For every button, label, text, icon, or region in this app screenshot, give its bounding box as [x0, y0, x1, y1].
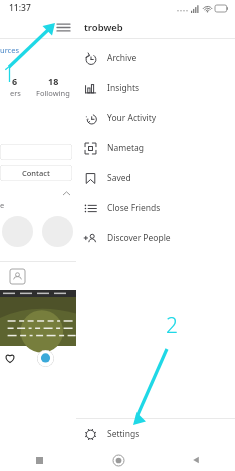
button[interactable]: Nametag: [76, 133, 235, 163]
staticText: trobweb: [84, 21, 123, 34]
staticText: Nametag: [107, 142, 145, 154]
staticText: urces: [0, 45, 20, 55]
staticText: 6: [12, 75, 18, 87]
staticText: e: [0, 200, 5, 210]
staticText: 1: [3, 60, 15, 89]
staticText: 18: [48, 75, 59, 87]
button[interactable]: [0, 144, 72, 160]
staticText: Contact: [22, 168, 50, 178]
button[interactable]: Back: [157, 449, 235, 471]
staticText: ers: [10, 88, 21, 98]
staticText: 11:37: [9, 2, 31, 14]
staticText: 2: [166, 311, 178, 340]
button[interactable]: Home: [79, 449, 157, 471]
button[interactable]: Recent apps: [0, 449, 79, 471]
button[interactable]: Settings: [76, 419, 235, 449]
staticText: Archive: [107, 52, 137, 64]
staticText: Discover People: [107, 232, 171, 244]
button[interactable]: Your Activity: [76, 103, 235, 133]
button[interactable]: Archive: [76, 43, 235, 73]
button[interactable]: Discover People: [76, 223, 235, 253]
button[interactable]: Insights: [76, 73, 235, 103]
staticText: Saved: [107, 172, 131, 184]
staticText: Close Friends: [107, 202, 161, 214]
staticText: Following: [36, 88, 70, 98]
staticText: Insights: [107, 82, 140, 94]
button[interactable]: Saved: [76, 163, 235, 193]
button[interactable]: Close Friends: [76, 193, 235, 223]
staticText: Settings: [107, 428, 140, 440]
button[interactable]: Contact: [0, 165, 72, 181]
button[interactable]: Menu: [53, 17, 73, 37]
staticText: Your Activity: [107, 112, 157, 124]
